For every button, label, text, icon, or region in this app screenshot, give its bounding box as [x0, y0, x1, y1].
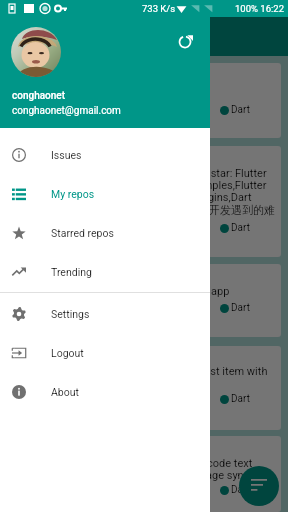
button[interactable]: About — [0, 372, 210, 411]
staticText: list item with — [205, 365, 268, 378]
staticText: 733 K/s — [142, 3, 176, 14]
staticText: Starred repos — [51, 227, 114, 239]
staticText: Trending — [51, 266, 92, 278]
button[interactable]: :star: Flutter — [7, 146, 281, 257]
button[interactable]: Starred repos — [0, 213, 210, 252]
staticText: 开发遇到的难 — [209, 203, 275, 217]
staticText: app — [211, 285, 230, 298]
staticText: samples,Flutter — [191, 179, 267, 192]
staticText: age syn — [206, 469, 244, 482]
button[interactable]: Issues — [0, 135, 210, 174]
staticText: conghaonet — [12, 90, 66, 102]
staticText: Dart — [231, 302, 250, 314]
staticText: conghaonet@gmail.com — [12, 105, 121, 117]
staticText: Dart — [231, 484, 250, 496]
button[interactable]: list item with — [7, 346, 281, 430]
staticText: My repos — [51, 188, 95, 200]
button[interactable]: Trending — [0, 252, 210, 291]
staticText: Settings — [51, 308, 90, 320]
staticText: Logout — [51, 347, 84, 359]
button[interactable]: Settings — [0, 294, 210, 333]
staticText: :star: Flutter — [208, 167, 267, 180]
staticText: Issues — [51, 149, 82, 161]
button[interactable]: app — [7, 264, 281, 337]
button[interactable]: My repos — [0, 174, 210, 213]
button[interactable]: Dart — [7, 63, 281, 138]
staticText: Dart — [231, 104, 250, 116]
button[interactable]: Logout — [0, 333, 210, 372]
staticText: Dart — [231, 222, 250, 234]
staticText: About — [51, 386, 79, 398]
button[interactable]: ts code text — [7, 436, 281, 512]
staticText: plugins,Dart — [193, 191, 252, 204]
button[interactable]: Sort — [239, 466, 279, 506]
staticText: Dart — [231, 393, 250, 405]
button[interactable]: Refresh — [174, 31, 196, 53]
staticText: 100% 16:22 — [235, 3, 284, 14]
staticText: ts code text — [195, 457, 253, 470]
